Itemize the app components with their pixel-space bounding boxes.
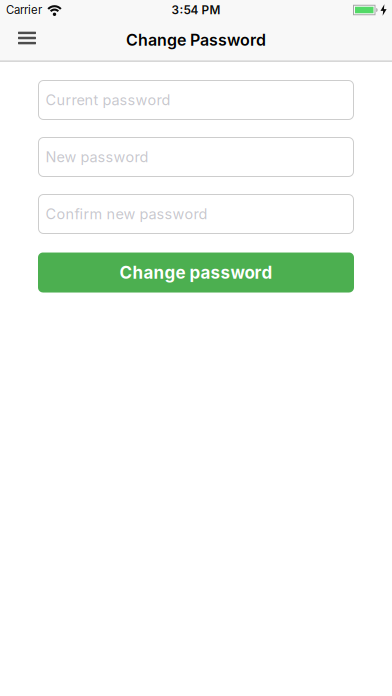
button[interactable]: Current password xyxy=(38,80,354,120)
staticText: Change Password xyxy=(126,30,266,50)
staticText: New password xyxy=(45,148,148,166)
staticText: Current password xyxy=(45,91,170,109)
button[interactable]: New password xyxy=(38,137,354,177)
button[interactable]: Change password xyxy=(38,252,354,292)
button[interactable]: Confirm new password xyxy=(38,194,354,234)
staticText: 3:54 PM xyxy=(171,3,220,17)
staticText: Carrier xyxy=(6,3,42,17)
staticText: Confirm new password xyxy=(45,205,207,223)
button[interactable]: Menu xyxy=(0,26,36,54)
staticText: Change password xyxy=(119,262,272,283)
